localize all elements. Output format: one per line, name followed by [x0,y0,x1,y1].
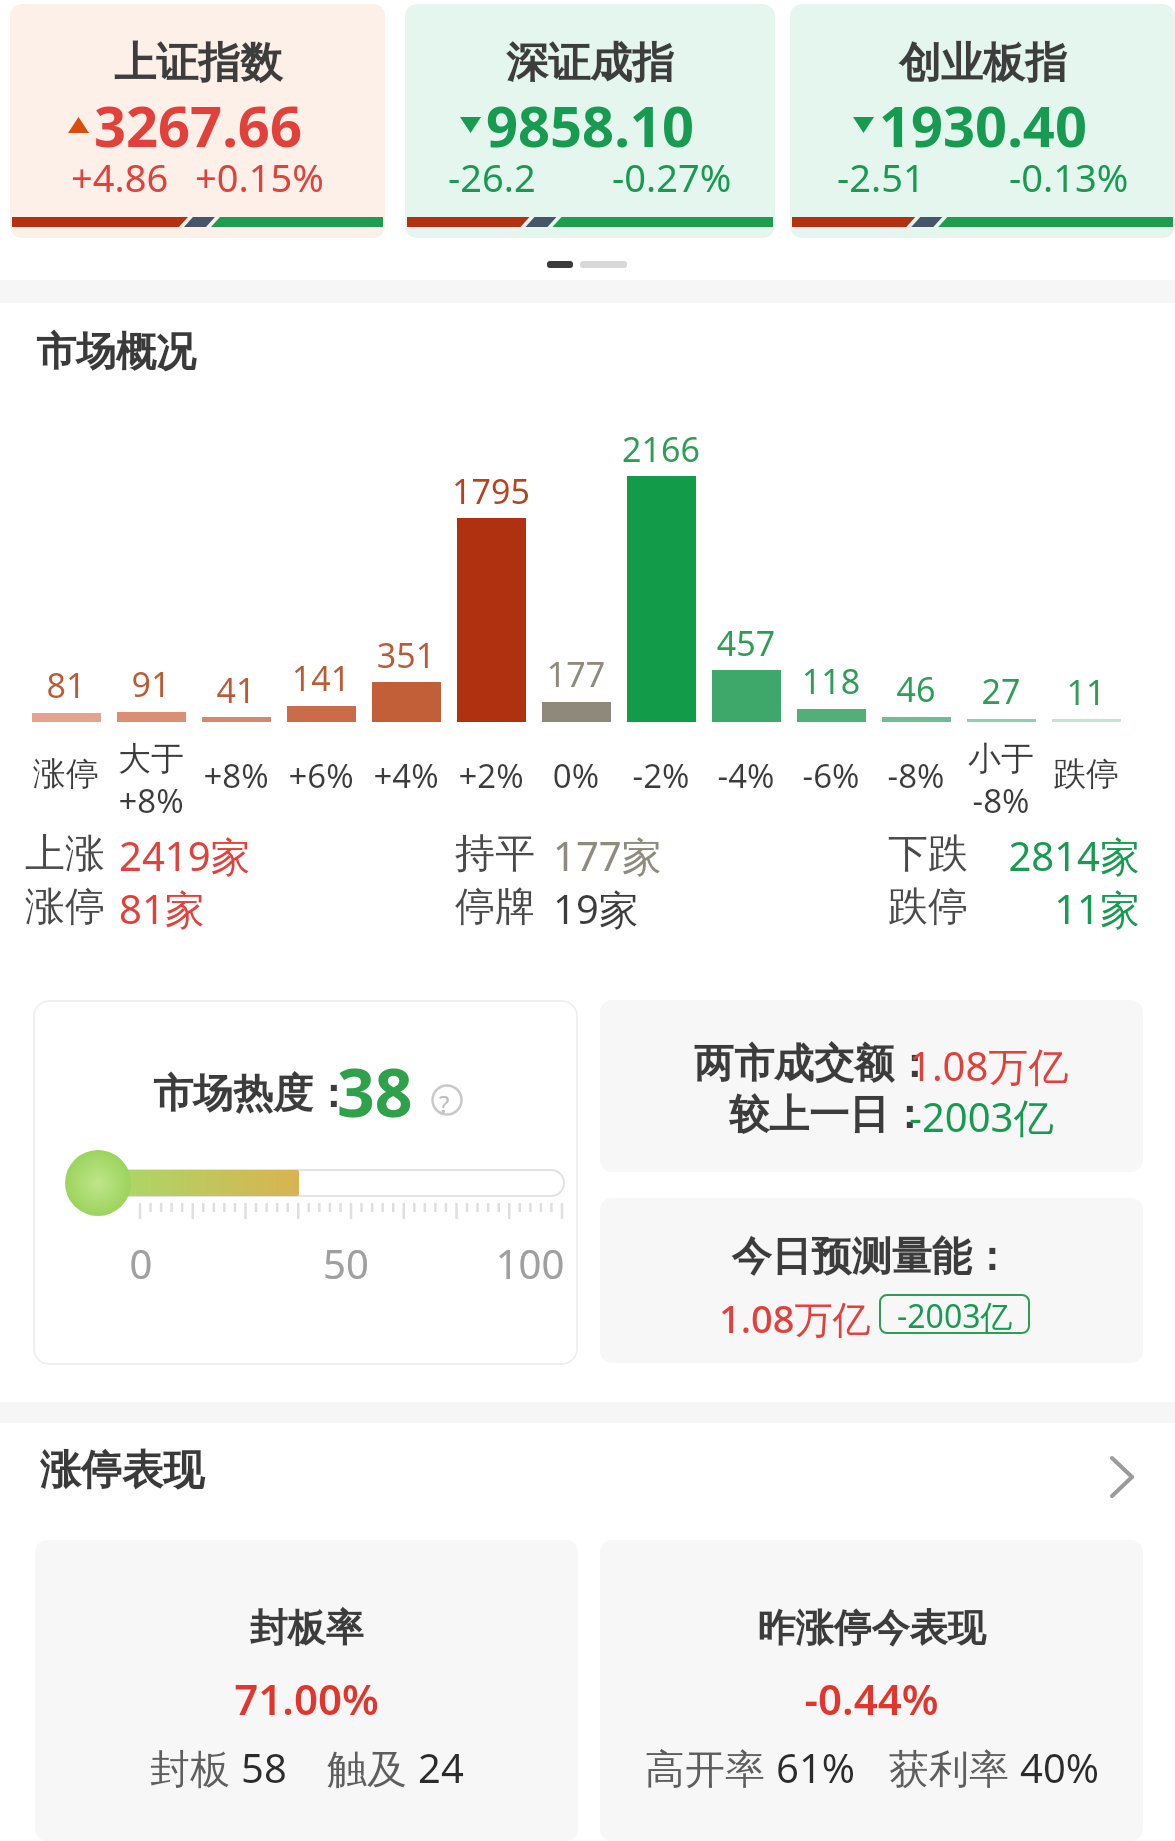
staticText: 40% [1020,1740,1099,1794]
staticText: -6% [776,753,886,798]
staticText: -0.27% [612,151,732,203]
staticText: 46 [861,666,971,712]
staticText: +4.86 [71,151,169,203]
staticText: 141 [266,655,376,701]
staticText: 38 [337,1046,413,1136]
button[interactable] [1102,1454,1142,1500]
staticText: 涨停 [11,753,121,795]
staticText: 351 [351,632,461,678]
staticText: 177 [521,651,631,697]
staticText: 涨停 [25,881,105,931]
staticText: 创业板指 [899,37,1067,90]
staticText: 市场概况 [36,326,196,376]
staticText: -8% [861,753,971,798]
staticText: 两市成交额： [694,1038,934,1088]
staticText: 停牌 [455,881,535,931]
staticText: 下跌 [888,828,968,878]
staticText: 1.08万亿 [909,1038,1069,1093]
staticText: 2419家 [119,828,251,883]
staticText: 封板率 [35,1604,578,1652]
staticText: 今日预测量能： [600,1231,1143,1281]
staticText: 41 [181,667,291,713]
staticText: +0.15% [195,151,324,203]
button[interactable]: 昨涨停今表现 [600,1540,1143,1841]
staticText: +8% [181,753,291,798]
staticText: -2% [606,753,716,798]
staticText: 1.08万亿 [719,1292,871,1344]
staticText: 0 [81,1236,201,1290]
staticText: 11 [1031,669,1141,715]
staticText: 457 [691,620,801,666]
staticText: 1795 [436,468,546,514]
staticText: 封板 [150,1740,241,1795]
staticText: ? [439,1087,450,1120]
staticText: 大于 +8% [96,738,206,823]
staticText: 上涨 [25,828,105,878]
staticText: 2814家 [1008,828,1140,883]
staticText: 118 [776,658,886,704]
button[interactable]: 深证成指 [405,4,775,238]
staticText: 3267.66 [94,87,302,163]
staticText: 61% [776,1740,855,1794]
button[interactable]: 今日预测量能： [600,1198,1143,1363]
staticText: -26.2 [448,151,536,203]
staticText: 50 [286,1236,406,1290]
staticText: 较上一日： [729,1089,929,1139]
staticText: 2166 [606,426,716,472]
staticText: -2003亿 [909,1089,1054,1144]
staticText: 9858.10 [486,87,694,163]
staticText: 涨停表现 [40,1445,204,1497]
staticText: 81家 [119,881,205,936]
staticText: 177家 [553,828,662,883]
staticText: 81 [11,662,121,708]
staticText: 高开率 [645,1740,776,1795]
staticText: -2003亿 [897,1294,1013,1334]
staticText: 24 [418,1740,464,1794]
staticText: 持平 [455,828,535,878]
button[interactable]: 上证指数 [10,4,385,238]
button[interactable]: 市场热度： [33,1000,578,1365]
staticText: 触及 [327,1740,418,1795]
staticText: 上证指数 [114,37,282,90]
staticText: 91 [96,661,206,707]
staticText: 跌停 [888,881,968,931]
staticText: 获利率 [889,1740,1020,1795]
staticText: 小于 -8% [946,738,1056,823]
button[interactable]: 创业板指 [790,4,1175,238]
staticText: 100 [470,1236,578,1290]
staticText: +2% [436,753,546,798]
staticText: 深证成指 [506,37,674,90]
staticText: -0.44% [600,1670,1143,1727]
staticText: 跌停 [1031,753,1141,795]
staticText: 19家 [553,881,639,936]
staticText: 0% [521,753,631,798]
staticText: 58 [241,1740,287,1794]
staticText: +4% [351,753,461,798]
staticText: 11家 [1008,881,1140,936]
staticText: 1930.40 [879,87,1087,163]
button[interactable]: 封板率 [35,1540,578,1841]
button[interactable]: 两市成交额： [600,1000,1143,1172]
staticText: 昨涨停今表现 [600,1604,1143,1652]
staticText: +6% [266,753,376,798]
staticText: 27 [946,668,1056,714]
staticText: 71.00% [35,1670,578,1727]
staticText: -4% [691,753,801,798]
staticText: -2.51 [837,151,925,203]
staticText: 市场热度： [153,1068,353,1118]
staticText: -0.13% [1009,151,1129,203]
